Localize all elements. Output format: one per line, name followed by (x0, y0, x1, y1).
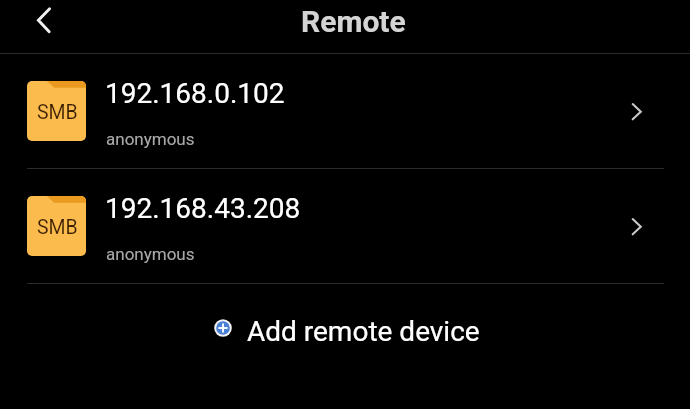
staticText: 192.168.0.102 (105, 77, 285, 110)
staticText: anonymous (106, 129, 195, 149)
button[interactable]: SMB (0, 54, 690, 168)
staticText: 192.168.43.208 (105, 192, 301, 225)
button[interactable]: SMB (0, 169, 690, 283)
staticText: SMB (37, 216, 78, 239)
staticText: Remote (301, 4, 406, 39)
staticText: anonymous (106, 244, 195, 264)
button[interactable]: Add remote device (205, 306, 495, 360)
staticText: Add remote device (247, 315, 480, 348)
staticText: SMB (37, 101, 78, 124)
button[interactable]: Back (14, 0, 66, 52)
